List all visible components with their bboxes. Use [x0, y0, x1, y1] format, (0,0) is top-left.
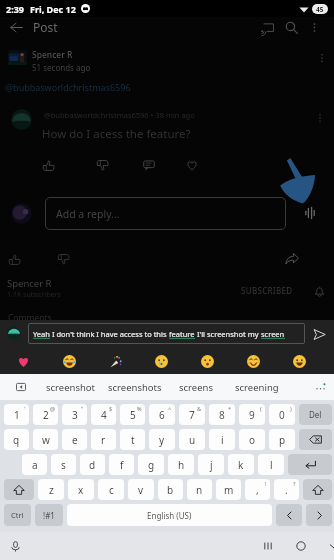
button[interactable]: l	[258, 454, 284, 475]
button[interactable]: Send	[310, 325, 329, 344]
button[interactable]: g	[138, 454, 164, 475]
button[interactable]	[276, 504, 302, 526]
button[interactable]: !#1	[35, 504, 63, 526]
button[interactable]: 8	[209, 404, 235, 425]
button[interactable]: Recent apps	[257, 535, 279, 557]
button[interactable]: Emoji	[108, 354, 122, 368]
button[interactable]: Emoji	[200, 354, 214, 368]
button[interactable]: e	[62, 429, 87, 450]
button[interactable]: c	[98, 479, 124, 500]
staticText: 1	[14, 408, 20, 422]
button[interactable]: k	[228, 454, 254, 475]
button[interactable]: Emoji	[292, 354, 306, 368]
button[interactable]	[4, 479, 34, 500]
button[interactable]: 7	[179, 404, 205, 425]
staticText: @bubbasworldchristmas6596	[5, 81, 131, 93]
button[interactable]: Heart	[182, 155, 202, 175]
button[interactable]: Dislike comment	[92, 155, 112, 175]
button[interactable]: Emoji	[154, 354, 168, 368]
button[interactable]: Comment options	[310, 108, 330, 128]
button[interactable]: screens	[175, 374, 217, 400]
button[interactable]: screenshots	[104, 374, 166, 400]
staticText: $	[109, 405, 113, 412]
button[interactable]: r	[91, 429, 116, 450]
button[interactable]: Reply	[139, 155, 159, 175]
button[interactable]: Hide keyboard	[323, 535, 334, 557]
staticText: Fri, Dec 12	[30, 3, 76, 15]
button[interactable]: t	[120, 429, 145, 450]
button[interactable]: Search	[279, 15, 303, 39]
button[interactable]: Cast	[256, 16, 279, 39]
button[interactable]: Like comment	[38, 155, 58, 175]
button[interactable]: SUBSCRIBED	[238, 283, 296, 298]
button[interactable]: 9	[239, 404, 265, 425]
button[interactable]: Voice input	[300, 203, 320, 223]
button[interactable]: a	[22, 454, 47, 475]
button[interactable]: 3	[62, 404, 87, 425]
button[interactable]: u	[179, 429, 205, 450]
button[interactable]: Dislike post	[53, 249, 73, 269]
button[interactable]: 6	[149, 404, 175, 425]
button[interactable]: y	[149, 429, 175, 450]
button[interactable]: Emoji	[16, 354, 30, 368]
button[interactable]	[306, 504, 332, 526]
button[interactable]: Post options	[311, 47, 333, 69]
button[interactable]: Share	[282, 249, 302, 269]
staticText: n	[196, 483, 203, 497]
button[interactable]: More suggestions	[312, 379, 328, 395]
button[interactable]	[303, 479, 332, 500]
staticText: !	[265, 480, 267, 487]
button[interactable]	[299, 429, 332, 450]
button[interactable]: h	[168, 454, 194, 475]
staticText: z	[49, 483, 54, 497]
staticText: ?	[293, 480, 296, 487]
button[interactable]: f	[109, 454, 134, 475]
button[interactable]: s	[51, 454, 76, 475]
staticText: t	[131, 433, 135, 447]
button[interactable]: English (US)	[67, 504, 272, 526]
button[interactable]: 4	[91, 404, 116, 425]
button[interactable]: Notifications	[310, 282, 328, 300]
button[interactable]: More options	[303, 16, 325, 38]
button[interactable]: 0	[269, 404, 295, 425]
button[interactable]: screening	[231, 374, 283, 400]
button[interactable]: j	[198, 454, 224, 475]
staticText: c	[109, 483, 114, 497]
button[interactable]: Back	[3, 14, 29, 40]
staticText: q	[13, 433, 20, 447]
button[interactable]: x	[68, 479, 94, 500]
button[interactable]: 2	[33, 404, 58, 425]
button[interactable]: w	[33, 429, 58, 450]
button[interactable]: m	[216, 479, 241, 500]
button[interactable]: Emoji	[62, 354, 76, 368]
staticText: k	[238, 458, 244, 472]
button[interactable]: q	[4, 429, 29, 450]
button[interactable]: Emoji	[246, 354, 260, 368]
button[interactable]: Yeah	[28, 323, 305, 344]
button[interactable]: Like post	[4, 249, 24, 269]
button[interactable]: ,	[245, 479, 270, 500]
staticText: &	[197, 405, 202, 412]
button[interactable]: z	[38, 479, 64, 500]
button[interactable]: 1	[4, 404, 29, 425]
button[interactable]: Home	[290, 535, 312, 557]
button[interactable]: screenshot	[42, 374, 100, 400]
button[interactable]: 5	[120, 404, 145, 425]
button[interactable]	[288, 454, 332, 475]
button[interactable]: v	[128, 479, 154, 500]
button[interactable]: Del	[299, 404, 332, 425]
button[interactable]: .	[274, 479, 299, 500]
button[interactable]: Voice typing	[6, 537, 24, 555]
staticText: How do I acess the feature?	[42, 126, 191, 142]
button[interactable]: Ctrl	[4, 504, 31, 526]
staticText: "	[81, 405, 84, 412]
staticText: Del	[309, 409, 322, 420]
button[interactable]: i	[209, 429, 235, 450]
button[interactable]: Clipboard	[14, 380, 28, 394]
button[interactable]: p	[269, 429, 295, 450]
button[interactable]: Add a reply...	[45, 197, 286, 230]
button[interactable]: d	[80, 454, 105, 475]
button[interactable]: b	[158, 479, 183, 500]
button[interactable]: o	[239, 429, 265, 450]
button[interactable]: n	[187, 479, 212, 500]
